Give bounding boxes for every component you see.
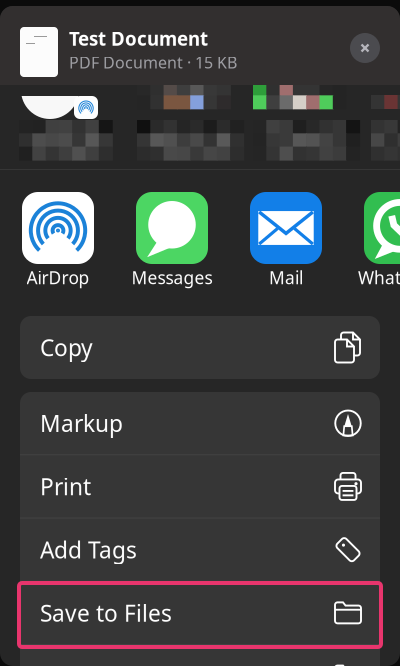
staticText: Save to Files (40, 598, 172, 628)
staticText: AirDrop (26, 266, 89, 289)
button[interactable]: AirDrop (1, 192, 115, 289)
staticText: Markup (40, 408, 123, 438)
staticText: Copy (40, 332, 93, 362)
button[interactable]: Messages (115, 192, 229, 289)
staticText: Add Tags (40, 535, 137, 565)
button[interactable]: Save to Files (20, 582, 380, 644)
staticText: PDF Document · 15 KB (69, 52, 237, 73)
staticText: Messages (131, 266, 212, 289)
button[interactable]: WhatsApp (343, 192, 400, 289)
button[interactable]: Mail (229, 192, 343, 289)
staticText: Test Document (69, 26, 208, 51)
button[interactable]: Markup (20, 392, 380, 454)
button[interactable]: Save to Photos (20, 645, 380, 666)
button[interactable]: Print (20, 455, 380, 518)
staticText: Mail (269, 266, 303, 289)
staticText: WhatsApp (358, 266, 400, 289)
staticText: Print (40, 471, 91, 501)
button[interactable]: Close (343, 26, 387, 70)
button[interactable]: Add Tags (20, 518, 380, 581)
button[interactable]: Copy (20, 316, 380, 379)
